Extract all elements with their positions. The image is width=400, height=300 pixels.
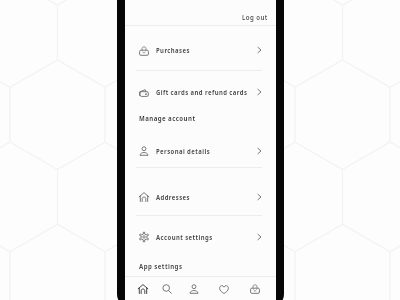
staticText: Purchases: [156, 46, 190, 55]
staticText: Manage account: [139, 114, 196, 124]
button[interactable]: Home: [132, 277, 154, 300]
button[interactable]: Wishlist: [213, 277, 235, 300]
button[interactable]: Addresses: [125, 167, 276, 214]
button[interactable]: Account: [183, 277, 205, 300]
staticText: Account settings: [156, 233, 213, 242]
staticText: Addresses: [156, 193, 191, 202]
button[interactable]: Gift cards and refund cards: [125, 71, 276, 112]
staticText: Log out: [242, 13, 268, 23]
staticText: Personal details: [156, 147, 211, 156]
button[interactable]: Bag: [244, 277, 266, 300]
button[interactable]: Personal details: [125, 130, 276, 166]
button[interactable]: Search: [156, 277, 178, 300]
staticText: Gift cards and refund cards: [156, 88, 247, 97]
button[interactable]: Account settings: [125, 215, 276, 258]
staticText: App settings: [139, 262, 182, 272]
button[interactable]: Purchases: [125, 25, 276, 70]
button[interactable]: Log out: [239, 11, 275, 25]
